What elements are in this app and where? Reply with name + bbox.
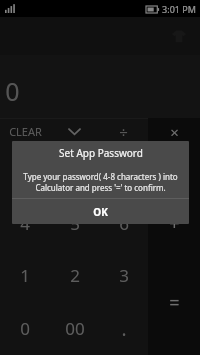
- staticText: 6: [119, 212, 129, 235]
- staticText: .: [121, 316, 127, 342]
- staticText: 7: [20, 160, 30, 183]
- staticText: ÷: [119, 122, 128, 142]
- button[interactable]: 0: [0, 302, 50, 355]
- button[interactable]: .: [99, 302, 148, 355]
- staticText: +: [169, 211, 180, 236]
- staticText: ×: [170, 122, 179, 142]
- staticText: −: [169, 159, 180, 184]
- staticText: 5: [70, 212, 80, 235]
- staticText: =: [169, 290, 180, 315]
- staticText: CLEAR: [9, 124, 42, 139]
- staticText: 2: [70, 264, 80, 287]
- button[interactable]: 00: [50, 302, 99, 355]
- button[interactable]: 9: [99, 145, 148, 197]
- button[interactable]: OK: [12, 199, 189, 224]
- button[interactable]: +: [148, 197, 200, 250]
- staticText: 3: [119, 264, 129, 287]
- button[interactable]: ÷: [99, 118, 148, 145]
- staticText: 8: [70, 160, 80, 183]
- staticText: 0: [5, 74, 20, 108]
- staticText: 9: [119, 160, 129, 183]
- staticText: 00: [65, 317, 85, 340]
- button[interactable]: CLEAR: [0, 118, 50, 145]
- staticText: Type your password( 4-8 characters ) int…: [23, 171, 178, 193]
- staticText: 1: [20, 264, 30, 287]
- button[interactable]: 6: [99, 197, 148, 249]
- button[interactable]: 2: [50, 249, 99, 302]
- staticText: 4: [20, 212, 30, 235]
- button[interactable]: 3: [99, 249, 148, 302]
- staticText: Set App Password: [59, 146, 143, 160]
- button[interactable]: 4: [0, 197, 50, 249]
- button[interactable]: 7: [0, 145, 50, 197]
- button[interactable]: 1: [0, 249, 50, 302]
- button[interactable]: 5: [50, 197, 99, 249]
- staticText: OK: [93, 205, 108, 219]
- button[interactable]: −: [148, 145, 200, 197]
- staticText: 3:01 PM: [162, 3, 196, 15]
- button[interactable]: ×: [148, 118, 200, 145]
- staticText: 0: [20, 317, 30, 340]
- button[interactable]: Backspace: [50, 118, 99, 145]
- button[interactable]: 8: [50, 145, 99, 197]
- button[interactable]: =: [148, 250, 200, 355]
